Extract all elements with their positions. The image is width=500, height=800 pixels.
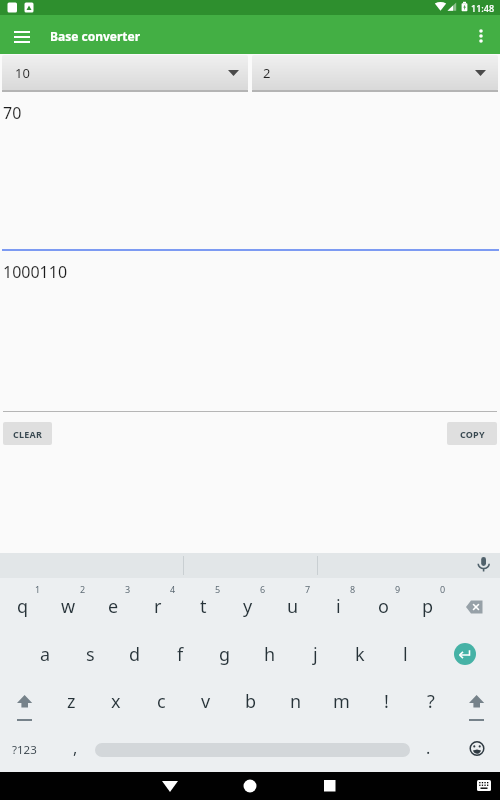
staticText: x [111,689,121,714]
staticText: b [245,689,257,714]
staticText: r [154,594,162,619]
button[interactable]: q [1,587,45,625]
staticText: s [86,642,95,667]
staticText: a [40,642,51,667]
staticText: k [355,642,365,667]
button[interactable]: a [23,635,67,673]
staticText: CLEAR [13,428,42,440]
staticText: , [73,737,78,759]
staticText: m [333,689,350,714]
button[interactable] [8,687,42,723]
staticText: l [403,642,408,667]
staticText: t [200,594,207,619]
button[interactable]: l [383,635,427,673]
staticText: w [61,594,76,619]
button[interactable]: y [226,587,270,625]
button[interactable]: h [248,635,292,673]
button[interactable] [310,772,350,800]
staticText: ? [427,689,435,714]
button[interactable]: v [184,682,228,720]
staticText: 1 [35,583,41,595]
button[interactable]: g [203,635,247,673]
button[interactable]: f [158,635,202,673]
button[interactable]: j [293,635,337,673]
staticText: u [287,594,299,619]
button[interactable]: e [91,587,135,625]
button[interactable]: , [53,729,97,767]
staticText: 3 [125,583,131,595]
button[interactable] [460,687,494,723]
staticText: f [177,642,184,667]
button[interactable]: p [406,587,450,625]
staticText: q [17,594,29,619]
staticText: y [243,594,253,619]
button[interactable]: ?123 [4,735,44,765]
button[interactable]: m [319,682,363,720]
button[interactable] [458,592,492,622]
staticText: v [201,689,211,714]
staticText: z [67,689,76,714]
staticText: Base converter [50,28,141,44]
button[interactable]: COPY [447,422,497,445]
staticText: d [129,642,141,667]
staticText: j [313,642,318,667]
button[interactable]: b [229,682,273,720]
staticText: . [426,737,431,759]
button[interactable]: n [274,682,318,720]
button[interactable]: d [113,635,157,673]
staticText: p [422,594,434,619]
staticText: 9 [395,583,401,595]
staticText: n [290,689,302,714]
staticText: 2 [263,64,271,82]
button[interactable]: . [406,729,450,767]
button[interactable] [471,25,493,47]
button[interactable] [230,772,270,800]
button[interactable] [468,553,498,578]
button[interactable]: ! [364,682,408,720]
staticText: h [264,642,276,667]
button[interactable] [150,772,190,800]
staticText: 70 [3,102,22,124]
button[interactable]: s [68,635,112,673]
button[interactable]: 10 [2,55,248,91]
button[interactable] [470,772,498,800]
button[interactable]: z [49,682,93,720]
button[interactable]: u [271,587,315,625]
staticText: 7 [305,583,311,595]
staticText: 1000110 [3,261,68,283]
staticText: e [108,594,119,619]
staticText: 0 [440,583,446,595]
staticText: 10 [15,64,30,82]
staticText: 6 [260,583,266,595]
button[interactable] [454,643,476,665]
button[interactable]: CLEAR [3,422,52,445]
button[interactable]: 2 [252,55,498,91]
staticText: 8 [350,583,356,595]
button[interactable]: c [139,682,183,720]
staticText: 4 [170,583,176,595]
staticText: 5 [215,583,221,595]
staticText: g [219,642,231,667]
button[interactable]: o [361,587,405,625]
button[interactable]: i [316,587,360,625]
staticText: ?123 [12,742,37,758]
button[interactable]: x [94,682,138,720]
button[interactable]: t [181,587,225,625]
staticText: i [336,594,341,619]
staticText: ! [384,689,389,714]
button[interactable] [463,735,491,763]
staticText: o [378,594,389,619]
button[interactable]: ? [409,682,453,720]
button[interactable]: w [46,587,90,625]
staticText: COPY [460,428,485,440]
button[interactable] [6,25,38,47]
button[interactable]: r [136,587,180,625]
staticText: 11:48 [471,2,495,14]
button[interactable]: k [338,635,382,673]
staticText: c [157,689,166,714]
staticText: 2 [80,583,86,595]
